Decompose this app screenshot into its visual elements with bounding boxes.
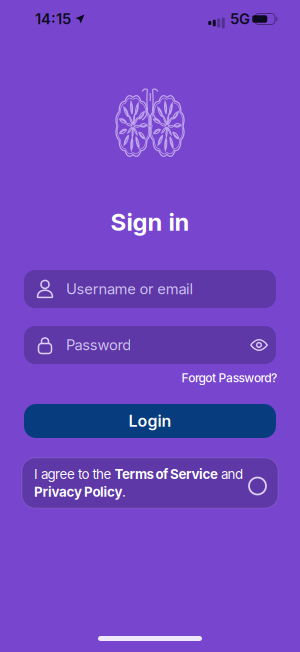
staticText: Forgot Password? xyxy=(181,371,277,385)
staticText: I agree to the Terms of Service and Priv… xyxy=(34,466,243,500)
staticText: Password xyxy=(66,336,131,354)
button[interactable]: I agree to the Terms of Service and Priv… xyxy=(22,458,278,508)
button[interactable]: Login xyxy=(24,404,276,438)
staticText: Login xyxy=(128,412,171,430)
staticText: 14:15 xyxy=(35,10,71,28)
button[interactable]: Password xyxy=(24,326,276,364)
button[interactable]: Forgot Password? xyxy=(181,371,277,385)
staticText: Username or email xyxy=(66,280,194,298)
staticText: 5G xyxy=(230,10,250,28)
button[interactable]: Show password xyxy=(250,339,268,351)
staticText: Sign in xyxy=(110,208,189,236)
button[interactable]: Username or email xyxy=(24,270,276,308)
